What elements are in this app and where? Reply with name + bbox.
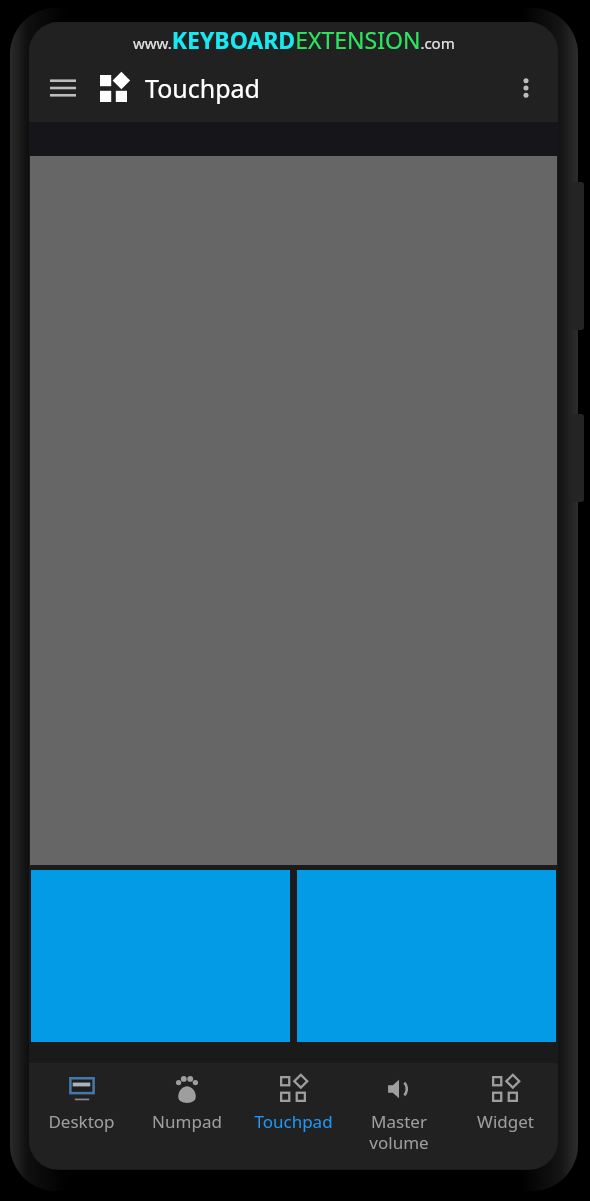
button[interactable]: Desktop: [29, 1063, 134, 1169]
button[interactable]: Numpad: [134, 1063, 240, 1169]
staticText: Numpad: [152, 1110, 222, 1133]
button[interactable]: Widget: [452, 1063, 558, 1169]
button[interactable]: Master volume: [346, 1063, 452, 1169]
button[interactable]: Touchpad: [240, 1063, 346, 1169]
button[interactable]: More options: [502, 64, 550, 112]
button[interactable]: Open navigation drawer: [39, 64, 87, 112]
staticText: www.KEYBOARDEXTENSION.com: [133, 24, 455, 55]
staticText: Touchpad: [254, 1110, 333, 1133]
staticText: Touchpad: [145, 71, 260, 105]
staticText: Master volume: [369, 1110, 429, 1154]
staticText: Desktop: [48, 1110, 115, 1133]
staticText: Widget: [477, 1110, 534, 1133]
